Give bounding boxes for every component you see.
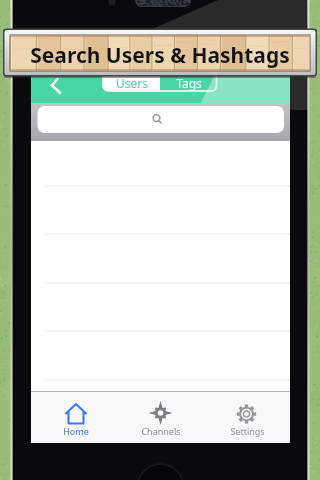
button[interactable] (204, 392, 290, 443)
staticText: Users (116, 75, 148, 91)
staticText: Channels (141, 425, 181, 437)
button[interactable] (160, 72, 217, 91)
staticText: Settings (230, 425, 265, 437)
button[interactable] (38, 106, 285, 133)
staticText: Search Users & Hashtags (30, 41, 290, 70)
button[interactable] (42, 72, 70, 102)
button[interactable] (117, 392, 204, 443)
button[interactable] (103, 72, 160, 91)
staticText: Home (63, 425, 89, 437)
staticText: Tags (176, 75, 202, 91)
button[interactable] (31, 392, 117, 443)
